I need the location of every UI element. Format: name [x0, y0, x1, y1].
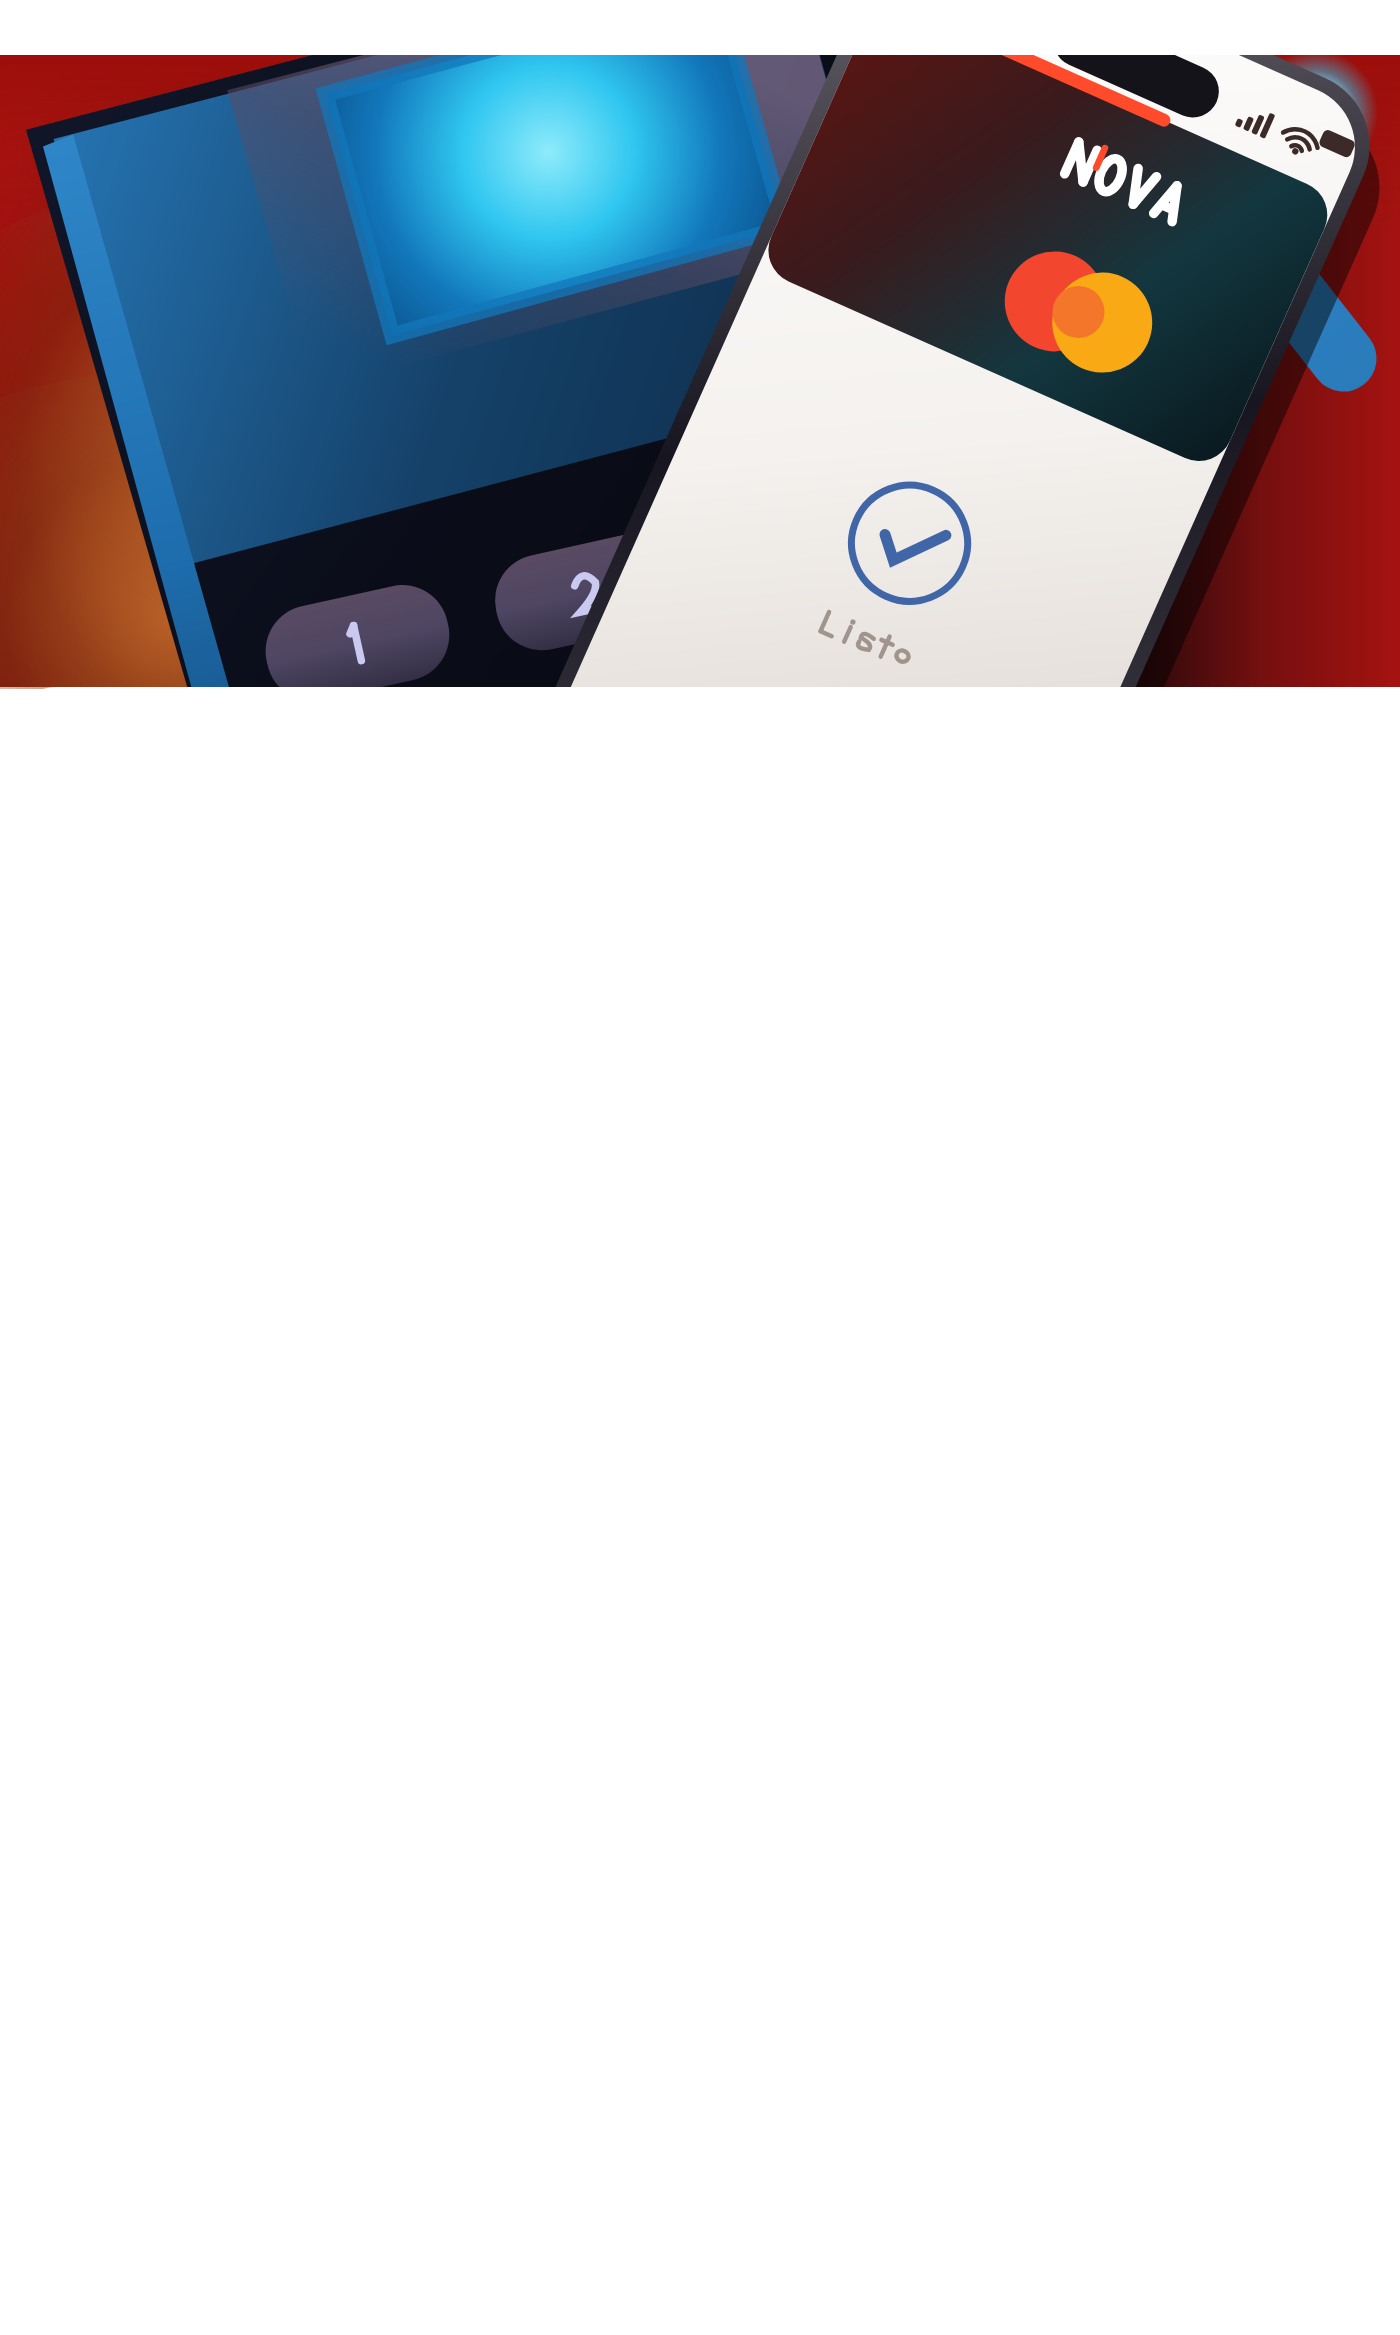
other: Contactless payment confirmation — [0, 0, 1400, 2335]
